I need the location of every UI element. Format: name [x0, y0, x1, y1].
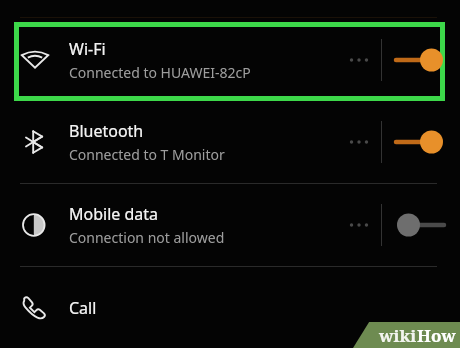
button[interactable]: Turn off [396, 43, 444, 77]
staticText: Connected to T Monitor [69, 145, 225, 164]
staticText: Connection not allowed [69, 228, 225, 247]
staticText: wiki [379, 324, 417, 347]
other: Mobile data [20, 210, 50, 240]
staticText: Mobile data [69, 203, 159, 225]
button[interactable]: Mobile data [0, 184, 460, 266]
button[interactable]: Call [0, 267, 460, 348]
staticText: Call [69, 297, 97, 319]
button[interactable]: More options [344, 205, 374, 245]
button[interactable]: Turn on [396, 208, 444, 242]
other: Bluetooth [20, 127, 50, 157]
staticText: Connected to HUAWEI-82cP [69, 63, 251, 82]
staticText: Bluetooth [69, 120, 144, 142]
staticText: How [417, 324, 456, 347]
button[interactable]: Bluetooth [0, 101, 460, 183]
button[interactable]: More options [344, 40, 374, 80]
button[interactable]: Wi-Fi [0, 18, 460, 101]
other: Wi-Fi [20, 45, 50, 75]
other: Call [20, 293, 50, 323]
staticText: Wi-Fi [69, 38, 106, 60]
button[interactable]: Turn off [396, 125, 444, 159]
button[interactable]: More options [344, 122, 374, 162]
